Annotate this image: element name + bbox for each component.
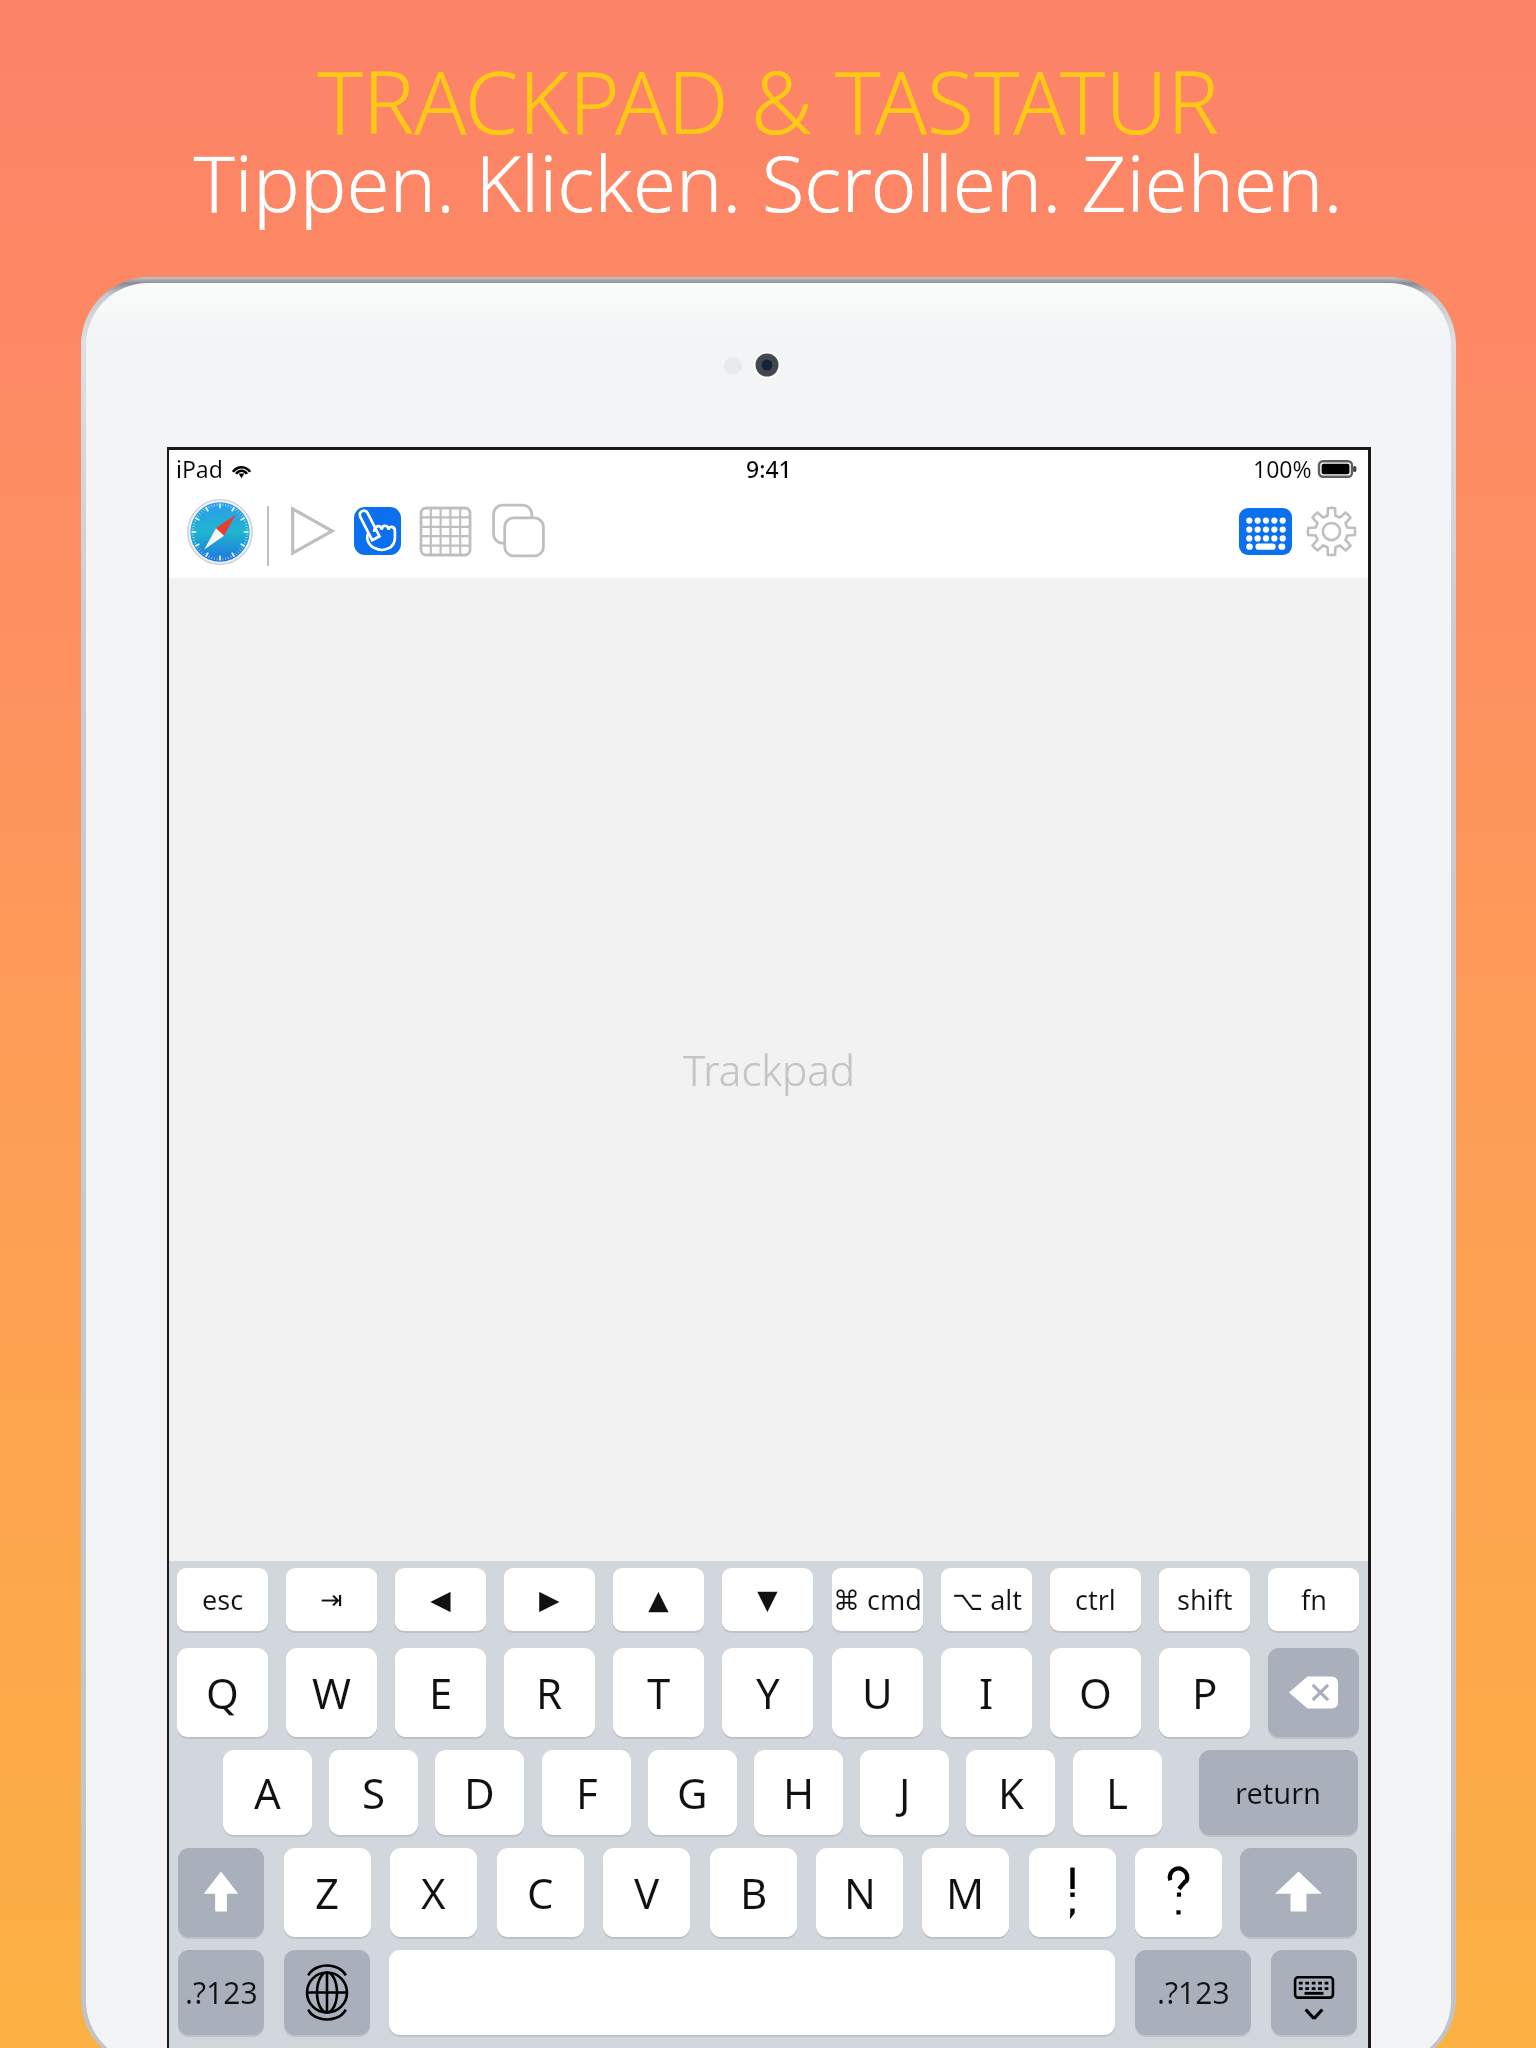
button[interactable]: A [223, 1750, 312, 1835]
button[interactable]: ▶ [504, 1568, 595, 1631]
button[interactable]: P [1159, 1648, 1250, 1737]
button[interactable]: K [966, 1750, 1055, 1835]
staticText: P [1192, 1664, 1218, 1721]
button[interactable]: G [648, 1750, 737, 1835]
staticText: .?123 [185, 1972, 258, 2013]
button[interactable]: I [941, 1648, 1032, 1737]
staticText: G [677, 1764, 708, 1821]
button[interactable]: H [754, 1750, 843, 1835]
staticText: H [783, 1764, 815, 1821]
staticText: shift [1177, 1581, 1233, 1618]
button[interactable]: N [816, 1848, 903, 1937]
button[interactable]: ◀ [395, 1568, 486, 1631]
button[interactable]: fn [1268, 1568, 1359, 1631]
button[interactable]: X [390, 1848, 477, 1937]
button[interactable] [1268, 1648, 1359, 1737]
staticText: ◀ [430, 1584, 451, 1615]
staticText: O [1079, 1664, 1112, 1721]
button[interactable]: L [1073, 1750, 1162, 1835]
button[interactable]: Keyboard [1239, 508, 1292, 555]
button[interactable]: esc [177, 1568, 268, 1631]
button[interactable]: T [613, 1648, 704, 1737]
button[interactable]: Q [177, 1648, 268, 1737]
staticText: L [1106, 1764, 1129, 1821]
button[interactable]: Z [284, 1848, 371, 1937]
button[interactable]: .?123 [178, 1950, 264, 2035]
button[interactable]: J [860, 1750, 949, 1835]
staticText: S [362, 1764, 386, 1821]
button[interactable]: E [395, 1648, 486, 1737]
staticText: M [946, 1864, 985, 1921]
button[interactable]: ctrl [1050, 1568, 1141, 1631]
button[interactable]: Settings [1307, 507, 1356, 556]
button[interactable] [1029, 1848, 1116, 1937]
staticText: ▼ [757, 1584, 778, 1615]
button[interactable]: ▲ [613, 1568, 704, 1631]
staticText: Tippen. Klicken. Scrollen. Ziehen. [0, 129, 1536, 235]
staticText: Z [315, 1864, 340, 1921]
staticText: F [576, 1764, 598, 1821]
staticText: N [844, 1864, 876, 1921]
button[interactable]: O [1050, 1648, 1141, 1737]
button[interactable] [1240, 1848, 1357, 1937]
staticText: W [312, 1664, 352, 1721]
staticText: iPad [176, 453, 223, 484]
staticText: ▲ [648, 1584, 669, 1615]
staticText: 100% [1253, 453, 1312, 484]
staticText: E [429, 1664, 453, 1721]
button[interactable]: ⌥ alt [941, 1568, 1032, 1631]
button[interactable]: V [603, 1848, 690, 1937]
button[interactable]: F [542, 1750, 631, 1835]
staticText: Q [206, 1664, 239, 1721]
staticText: 9:41 [746, 453, 792, 484]
button[interactable]: W [286, 1648, 377, 1737]
button[interactable]: ▼ [722, 1568, 813, 1631]
button[interactable]: C [497, 1848, 584, 1937]
staticText: ⌥ alt [952, 1581, 1022, 1618]
button[interactable] [1135, 1848, 1222, 1937]
button[interactable]: B [710, 1848, 797, 1937]
button[interactable] [284, 1950, 370, 2035]
staticText: .?123 [1157, 1972, 1230, 2013]
button[interactable]: ⌘ cmd [832, 1568, 923, 1631]
staticText: U [862, 1664, 893, 1721]
staticText: V [634, 1864, 660, 1921]
staticText: C [527, 1864, 554, 1921]
staticText: ctrl [1075, 1581, 1116, 1618]
button[interactable] [178, 1848, 264, 1937]
button[interactable]: U [832, 1648, 923, 1737]
button[interactable]: Y [722, 1648, 813, 1737]
button[interactable]: Trackpad mode [354, 507, 401, 555]
staticText: fn [1301, 1581, 1327, 1618]
button[interactable]: Safari [187, 499, 253, 565]
button[interactable]: .?123 [1135, 1950, 1251, 2035]
staticText: Trackpad [683, 1041, 855, 1098]
button[interactable]: shift [1159, 1568, 1250, 1631]
staticText: T [647, 1664, 671, 1721]
button[interactable]: return [1199, 1750, 1358, 1835]
staticText: ⇥ [320, 1584, 343, 1615]
staticText: TRACKPAD & TASTATUR [0, 42, 1536, 159]
staticText: D [464, 1764, 495, 1821]
button[interactable] [1271, 1950, 1357, 2035]
staticText: R [536, 1664, 563, 1721]
staticText: esc [202, 1581, 244, 1618]
button[interactable]: Windows [492, 504, 545, 557]
staticText: K [998, 1764, 1024, 1821]
staticText: J [899, 1764, 911, 1821]
staticText: A [254, 1764, 281, 1821]
staticText: ⌘ cmd [833, 1581, 922, 1618]
button[interactable]: Grid [421, 508, 470, 555]
staticText: return [1235, 1773, 1322, 1812]
button[interactable]: R [504, 1648, 595, 1737]
button[interactable]: M [922, 1848, 1009, 1937]
staticText: X [421, 1864, 446, 1921]
button[interactable]: Play [290, 507, 334, 555]
button[interactable]: D [435, 1750, 524, 1835]
staticText: I [979, 1664, 994, 1721]
staticText: B [740, 1864, 768, 1921]
button[interactable]: S [329, 1750, 418, 1835]
button[interactable]: ⇥ [286, 1568, 377, 1631]
staticText: Y [756, 1664, 780, 1721]
